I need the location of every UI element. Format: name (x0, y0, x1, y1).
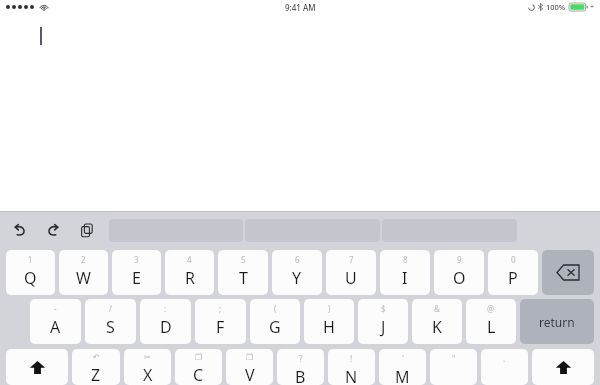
button[interactable]: Shift (532, 349, 594, 385)
staticText: 2 (81, 254, 86, 265)
staticText: 3 (134, 254, 139, 265)
button[interactable]: ❐ (226, 349, 273, 385)
button[interactable]: ↶ (72, 349, 120, 385)
button[interactable]: 9 (434, 250, 484, 295)
staticText: 9:41 AM (285, 2, 316, 13)
staticText: " (452, 353, 456, 364)
staticText: 6 (295, 254, 300, 265)
staticText: 100% (546, 2, 566, 12)
button[interactable]: ✂ (124, 349, 171, 385)
staticText: return (539, 314, 575, 330)
staticText: 1 (28, 254, 33, 265)
button[interactable]: Paste (72, 215, 102, 245)
button[interactable]: - (30, 299, 81, 344)
staticText: L (487, 316, 496, 338)
button[interactable]: ) (304, 299, 354, 344)
staticText: : (164, 303, 167, 314)
staticText: Z (91, 364, 101, 385)
staticText: B (295, 366, 306, 385)
button[interactable]: / (85, 299, 136, 344)
button[interactable]: 4 (165, 250, 214, 295)
staticText: + (590, 2, 595, 12)
staticText: ( (274, 303, 277, 314)
staticText: X (143, 364, 153, 385)
button[interactable]: $ (358, 299, 408, 344)
staticText: H (323, 316, 335, 338)
button[interactable]: . (481, 349, 528, 385)
staticText: 5 (241, 254, 246, 265)
button[interactable]: Redo (38, 215, 68, 245)
button[interactable]: 7 (326, 250, 376, 295)
button[interactable]: ! (328, 349, 375, 385)
staticText: E (132, 267, 141, 289)
staticText: V (245, 364, 255, 385)
button[interactable]: Shift (6, 349, 68, 385)
button[interactable]: @ (466, 299, 516, 344)
button[interactable]: & (412, 299, 462, 344)
staticText: J (381, 316, 386, 338)
button[interactable]: return (520, 299, 594, 344)
button[interactable]: ? (277, 349, 324, 385)
button[interactable]: 6 (272, 250, 322, 295)
button[interactable]: 5 (218, 250, 268, 295)
staticText: G (269, 316, 281, 338)
staticText: ? (299, 353, 303, 364)
staticText: ❐ (246, 353, 254, 362)
staticText: 9 (457, 254, 462, 265)
staticText: N (345, 366, 358, 385)
staticText: ❐ (195, 353, 203, 362)
button[interactable]: 0 (488, 250, 538, 295)
staticText: U (345, 267, 357, 289)
staticText: Y (292, 267, 302, 289)
staticText: I (402, 267, 408, 289)
button[interactable]: : (140, 299, 191, 344)
staticText: K (432, 316, 442, 338)
button[interactable]: ( (250, 299, 300, 344)
staticText: F (216, 316, 225, 338)
staticText: ↶ (93, 353, 100, 362)
staticText: 0 (511, 254, 516, 265)
staticText: M (395, 366, 410, 385)
staticText: ; (219, 303, 222, 314)
staticText: / (109, 303, 112, 314)
staticText: 8 (403, 254, 408, 265)
button[interactable]: ❐ (175, 349, 222, 385)
button[interactable]: 1 (6, 250, 55, 295)
staticText: ' (402, 353, 404, 364)
button[interactable]: 2 (59, 250, 108, 295)
staticText: $ (381, 303, 386, 314)
staticText: A (50, 316, 61, 338)
button[interactable]: 8 (380, 250, 430, 295)
staticText: ) (328, 303, 331, 314)
staticText: & (434, 303, 440, 314)
button[interactable]: Backspace (542, 250, 594, 295)
staticText: 7 (349, 254, 354, 265)
staticText: ! (350, 353, 353, 364)
staticText: - (54, 303, 57, 314)
staticText: W (76, 267, 91, 289)
staticText: . (503, 353, 506, 364)
staticText: Q (24, 267, 37, 289)
button[interactable]: " (430, 349, 477, 385)
button[interactable]: ; (195, 299, 246, 344)
staticText: P (508, 267, 518, 289)
staticText: D (160, 316, 172, 338)
staticText: C (193, 364, 204, 385)
staticText: O (453, 267, 466, 289)
button[interactable]: Undo (4, 215, 34, 245)
staticText: @ (487, 303, 495, 314)
button[interactable]: ' (379, 349, 426, 385)
staticText: 4 (187, 254, 192, 265)
staticText: ✂ (144, 353, 151, 362)
staticText: T (239, 267, 248, 289)
staticText: S (106, 316, 115, 338)
button[interactable]: 3 (112, 250, 161, 295)
staticText: R (185, 267, 195, 289)
